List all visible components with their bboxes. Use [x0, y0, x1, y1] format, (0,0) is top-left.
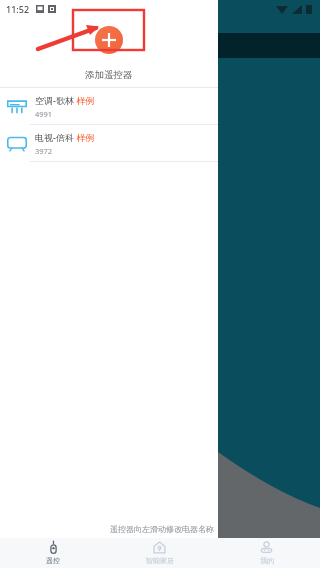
- staticText: 我的: [260, 556, 274, 565]
- staticText: 智能家居: [146, 556, 174, 565]
- staticText: 空调-歌林 样例: [35, 94, 95, 106]
- button[interactable]: 空调-歌林 样例: [0, 88, 218, 124]
- staticText: 遥控: [46, 556, 60, 565]
- button[interactable]: 电视-倍科 样例: [0, 125, 218, 161]
- staticText: 4991: [35, 109, 53, 119]
- staticText: 电视-倍科 样例: [35, 131, 95, 143]
- button[interactable]: 添加遥控器: [95, 26, 123, 54]
- staticText: 添加遥控器: [85, 69, 133, 81]
- button[interactable]: 我的: [213, 538, 320, 568]
- staticText: 11:52: [6, 3, 30, 15]
- button[interactable]: 遥控: [0, 538, 106, 568]
- staticText: 3972: [35, 146, 53, 156]
- button[interactable]: 智能家居: [106, 538, 213, 568]
- staticText: 遥控器向左滑动修改电器名称: [110, 524, 214, 534]
